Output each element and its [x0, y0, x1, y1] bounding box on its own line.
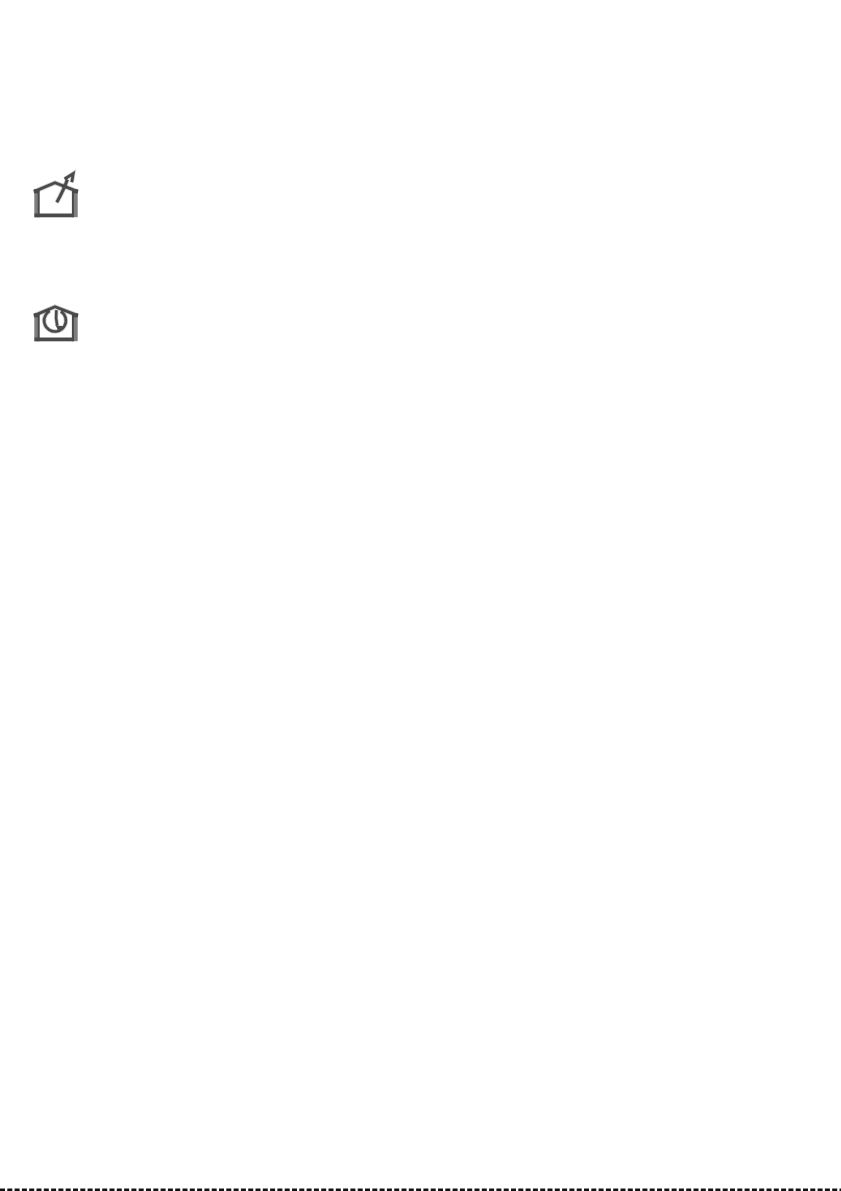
- button[interactable]: Move out of home: [0, 170, 841, 218]
- button[interactable]: Refresh home: [0, 294, 841, 342]
